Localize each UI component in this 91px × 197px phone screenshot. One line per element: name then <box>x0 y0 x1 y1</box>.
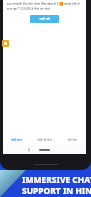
button[interactable]: Attachment <box>2 40 9 47</box>
staticText: जारी रखें <box>39 17 50 21</box>
button[interactable]: कोई भी पेज <box>30 134 58 145</box>
button[interactable]: मेरे पेज <box>58 134 86 145</box>
staticText: सभा पृष्ठ *123/456# नीचे भर जोड़ो <box>7 7 82 11</box>
staticText: SUPPORT IN HINDI <box>22 185 91 196</box>
staticText: IMMERSIVE CHAT <box>22 174 91 185</box>
staticText: कोई भी पेज <box>37 137 52 142</box>
staticText: ऐसी पेज <box>11 137 22 142</box>
button[interactable]: Home <box>39 149 50 151</box>
button[interactable]: Back <box>26 147 32 153</box>
button[interactable]: ऐसी पेज <box>3 134 30 145</box>
staticText: मेरे पेज <box>68 137 77 142</box>
button[interactable]: जारी रखें <box>30 15 59 23</box>
staticText: इस जानकारी लिए लोग भीतर लिंक खोज ले हैं … <box>7 2 82 6</box>
